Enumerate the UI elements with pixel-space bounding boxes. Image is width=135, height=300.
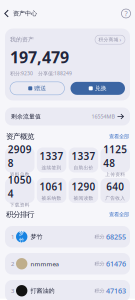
staticText: 112548 (103, 143, 127, 170)
button[interactable]: 资产中心 (0, 4, 37, 23)
staticText: 上传资料 (105, 171, 125, 177)
staticText: 兑换 (95, 85, 107, 92)
button[interactable]: 1 (5, 226, 130, 247)
button[interactable]: 640 (100, 178, 130, 203)
staticText: 我的资产 (10, 36, 34, 43)
staticText: 2 (11, 260, 14, 268)
staticText: nmmmea (30, 260, 58, 268)
staticText: 积分 (94, 261, 104, 267)
staticText: 61476 (106, 259, 126, 269)
staticText: 赠送 (34, 85, 46, 92)
staticText: 资产中心 (13, 10, 37, 17)
staticText: 广告收入 (105, 195, 125, 201)
staticText: 查看全部 (109, 211, 129, 218)
button[interactable]: 剩余流量值 (0, 107, 135, 125)
staticText: 1337 (71, 149, 95, 163)
staticText: 积分 (94, 234, 104, 240)
staticText: 资料总数 (10, 171, 30, 177)
button[interactable]: 1061 (37, 178, 66, 203)
staticText: 剩余流量值 (11, 113, 41, 120)
button[interactable]: 查看全部 (109, 133, 129, 140)
staticText: 下载资料 (10, 202, 30, 208)
staticText: 3 (11, 287, 14, 295)
staticText: 被阅读数 (73, 195, 93, 201)
staticText: 积分:9230 (10, 70, 33, 77)
staticText: 打酱油的 (30, 287, 54, 295)
staticText: 10504 (8, 173, 32, 200)
staticText: 68255 (106, 232, 126, 242)
button[interactable]: 1337 (69, 147, 98, 172)
staticText: 连续签到 (42, 164, 62, 170)
button[interactable]: 兑换 (70, 82, 125, 95)
staticText: 分享值:188249 (38, 70, 72, 77)
staticText: 资产概览 (6, 132, 34, 141)
staticText: 积分排行 (6, 210, 34, 219)
button[interactable]: 3 (5, 280, 130, 300)
button[interactable]: 赠送 (10, 82, 64, 95)
staticText: 积分 (94, 288, 104, 294)
button[interactable]: 29098 (5, 147, 34, 172)
button[interactable]: 112548 (100, 147, 130, 172)
staticText: 1 (11, 233, 14, 241)
staticText: 梦竹 (19, 230, 25, 244)
staticText: 16554MB (91, 113, 114, 120)
staticText: 1337 (40, 149, 64, 163)
staticText: 1061 (40, 180, 64, 193)
staticText: › (119, 36, 121, 43)
button[interactable]: 1290 (69, 178, 98, 203)
staticText: 积分商城 (98, 37, 118, 43)
staticText: 47163 (106, 286, 126, 296)
button[interactable]: 帮助 (121, 3, 135, 23)
staticText: 自助出价 (73, 164, 93, 170)
staticText: 640 (106, 180, 124, 193)
button[interactable]: 1337 (37, 147, 66, 172)
staticText: 197,479 (10, 46, 69, 68)
staticText: 被采纳数 (42, 195, 62, 201)
button[interactable]: 10504 (5, 178, 34, 203)
button[interactable]: 积分商城 (95, 35, 125, 44)
button[interactable]: 查看全部 (109, 211, 129, 218)
staticText: 查看全部 (109, 133, 129, 140)
button[interactable]: 2 (5, 253, 130, 274)
staticText: 1290 (71, 180, 95, 193)
staticText: 29098 (8, 143, 32, 170)
staticText: ? (124, 8, 127, 18)
staticText: 梦竹 (30, 233, 42, 241)
